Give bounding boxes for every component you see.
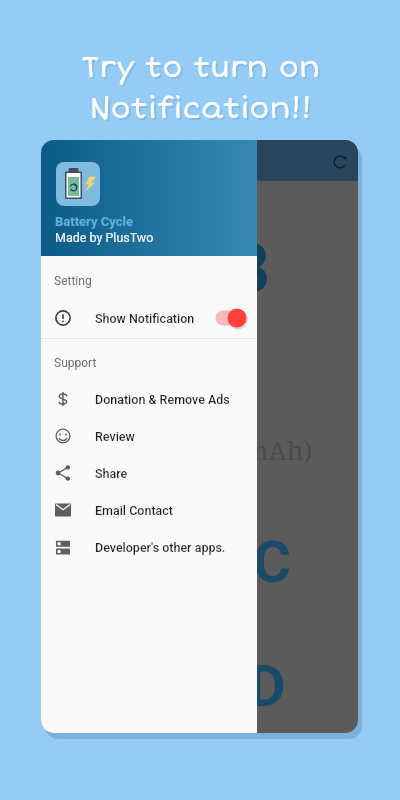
button[interactable]: Refresh: [322, 144, 358, 180]
staticText: mAh): [244, 432, 313, 467]
staticText: Try to turn on: [81, 49, 320, 86]
button[interactable]: Share: [41, 455, 257, 491]
staticText: Show Notification: [95, 311, 195, 326]
staticText: Setting: [54, 274, 92, 288]
staticText: Developer's other apps.: [95, 540, 226, 555]
staticText: Notification!!: [91, 92, 314, 129]
button[interactable]: Show Notification: [41, 300, 257, 336]
staticText: Support: [54, 356, 97, 370]
staticText: D: [248, 652, 286, 720]
staticText: Notification!!: [89, 90, 312, 127]
staticText: Review: [95, 429, 135, 444]
staticText: Share: [95, 466, 128, 481]
staticText: Email Contact: [95, 503, 173, 518]
staticText: 8: [231, 229, 271, 309]
button[interactable]: Email Contact: [41, 492, 257, 528]
staticText: Try to turn on: [83, 51, 322, 88]
staticText: Battery Cycle: [55, 214, 133, 229]
button[interactable]: Donation & Remove Ads: [41, 381, 257, 417]
staticText: Donation & Remove Ads: [95, 392, 230, 407]
button[interactable]: Review: [41, 418, 257, 454]
staticText: Made by PlusTwo: [55, 230, 154, 245]
staticText: C: [253, 528, 291, 596]
button[interactable]: Developer's other apps.: [41, 529, 257, 565]
button[interactable]: Show Notification toggle: [205, 300, 257, 336]
